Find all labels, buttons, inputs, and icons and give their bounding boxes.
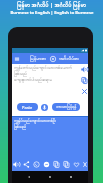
- button[interactable]: Share: [22, 160, 31, 169]
- staticText: အင်္ဂလိပ်စာ: [59, 55, 79, 62]
- button[interactable]: Swap languages: [49, 55, 57, 63]
- staticText: Paste: [22, 105, 33, 110]
- button[interactable]: Menu: [13, 55, 21, 63]
- button[interactable]: Share on Messenger: [42, 160, 51, 169]
- button[interactable]: ဘာသာပြန်ရန်: [52, 103, 80, 111]
- staticText: ဘာသာပြန်ရန်: [56, 104, 77, 110]
- staticText: Burmese to English | English to Burmese: [10, 10, 94, 16]
- button[interactable]: Close: [82, 160, 88, 169]
- button[interactable]: Duplicate: [62, 160, 71, 169]
- button[interactable]: Voice input: [41, 104, 48, 111]
- button[interactable]: Copy: [80, 76, 89, 85]
- button[interactable]: Speak result: [12, 160, 21, 169]
- staticText: ကျွန်ုပ်သည်ကျောင်းသားတစ်ဦး ဖြစ်သည်: [14, 118, 56, 130]
- button[interactable]: Copy result: [52, 160, 61, 169]
- staticText: မြန်မာ အင်္ဂလိပ် | အင်္ဂလိပ် မြန်မာ: [17, 1, 86, 10]
- button[interactable]: Share on WhatsApp: [32, 160, 41, 169]
- staticText: မြန်မာစာ: [30, 55, 47, 62]
- button[interactable]: Paste: [17, 103, 38, 111]
- staticText: ကျွန်တော်သည်ကျောင်းသားတစ်ယောက်ဖြစ်သည် ကျ…: [14, 65, 78, 83]
- button[interactable]: Favourite: [72, 160, 81, 169]
- button[interactable]: Clear: [80, 87, 89, 96]
- button[interactable]: Speak: [80, 65, 89, 74]
